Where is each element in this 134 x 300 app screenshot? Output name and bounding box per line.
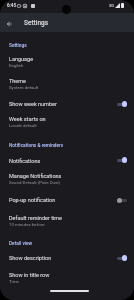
button[interactable]: Language, English bbox=[0, 52, 134, 70]
staticText: Language bbox=[9, 56, 34, 62]
button[interactable]: Pop-up notification bbox=[0, 192, 134, 207]
staticText: Locale default bbox=[9, 123, 37, 128]
staticText: Manage Notifications bbox=[9, 173, 62, 179]
staticText: Week starts on bbox=[9, 116, 46, 122]
button[interactable]: Week starts on, Locale default bbox=[0, 111, 134, 129]
staticText: Notifications bbox=[9, 158, 41, 164]
button[interactable]: Show in title row, Time bbox=[0, 268, 134, 286]
button[interactable]: Theme, System default bbox=[0, 74, 134, 92]
button[interactable]: Navigate up bbox=[3, 17, 16, 30]
staticText: 3G bbox=[109, 3, 114, 8]
staticText: Time bbox=[9, 279, 19, 284]
button[interactable]: Notifications bbox=[0, 152, 134, 167]
button[interactable]: Show description bbox=[0, 251, 134, 266]
staticText: Detail view bbox=[9, 241, 33, 247]
staticText: English bbox=[9, 63, 24, 68]
staticText: Default reminder time bbox=[9, 215, 63, 221]
staticText: Show in title row bbox=[9, 272, 50, 278]
staticText: Show week number bbox=[9, 101, 57, 107]
staticText: 10 minutes before bbox=[9, 222, 45, 227]
staticText: Pop-up notification bbox=[9, 197, 56, 203]
staticText: System default bbox=[9, 85, 39, 90]
staticText: Theme bbox=[9, 78, 26, 84]
button[interactable]: Manage Notifications bbox=[0, 168, 134, 186]
staticText: 6:45 bbox=[7, 3, 17, 8]
staticText: Sound Default (Pixie Dust) bbox=[9, 180, 61, 185]
staticText: Notifications & reminders bbox=[9, 143, 64, 149]
button[interactable]: Default reminder time bbox=[0, 210, 134, 228]
staticText: Settings bbox=[9, 43, 27, 49]
staticText: Settings bbox=[24, 19, 49, 27]
button[interactable]: Show week number bbox=[0, 96, 134, 111]
staticText: Show description bbox=[9, 255, 52, 261]
